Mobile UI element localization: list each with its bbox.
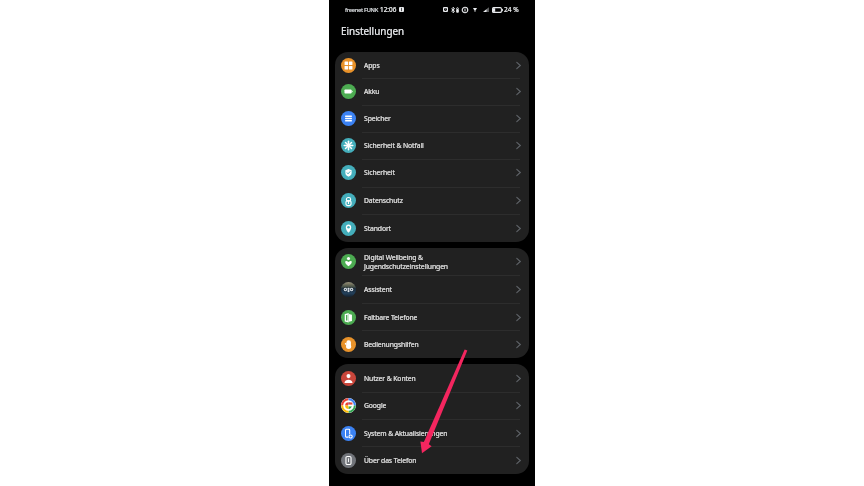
staticText: Jugendschutzeinstellungen — [364, 262, 448, 271]
button[interactable]: Speicher — [335, 105, 529, 132]
button[interactable]: Datenschutz — [335, 187, 529, 214]
button[interactable]: Über das Telefon — [335, 446, 529, 474]
staticText: Apps — [364, 61, 380, 70]
staticText: Bedienungshilfen — [364, 340, 419, 349]
staticText: Speicher — [364, 114, 391, 123]
staticText: Nutzer & Konten — [364, 374, 416, 383]
other: Mobile signal — [483, 7, 489, 12]
button[interactable]: Assistent — [335, 275, 529, 303]
staticText: Faltbare Telefone — [364, 313, 418, 322]
staticText: Sicherheit & Notfall — [364, 141, 424, 150]
staticText: Sicherheit — [364, 168, 395, 177]
button[interactable]: Faltbare Telefone — [335, 303, 529, 331]
button[interactable]: Standort — [335, 214, 529, 242]
staticText: System & Aktualisierungen — [364, 429, 448, 438]
staticText: Standort — [364, 224, 391, 233]
staticText: Assistent — [364, 285, 392, 294]
button[interactable]: Sicherheit — [335, 159, 529, 186]
button[interactable]: Akku — [335, 78, 529, 105]
button[interactable]: Sicherheit & Notfall — [335, 132, 529, 159]
other: Do not disturb — [462, 7, 468, 13]
staticText: Datenschutz — [364, 196, 403, 205]
button[interactable]: Apps — [335, 52, 529, 78]
staticText: Über das Telefon — [364, 456, 417, 465]
other: Battery — [492, 7, 503, 13]
other: Silent mode — [456, 7, 459, 13]
button[interactable]: System & Aktualisierungen — [335, 419, 529, 447]
staticText: 12:06 — [380, 5, 397, 14]
other: Bluetooth — [451, 7, 455, 13]
staticText: Einstellungen — [341, 24, 405, 37]
button[interactable]: Nutzer & Konten — [335, 364, 529, 392]
button[interactable]: Bedienungshilfen — [335, 330, 529, 358]
staticText: 24 % — [504, 5, 519, 14]
staticText: Google — [364, 401, 387, 410]
staticText: freenet FUNK — [345, 6, 378, 14]
staticText: Akku — [364, 87, 380, 96]
staticText: Digital Wellbeing & — [364, 253, 423, 262]
other: Wi-Fi — [473, 7, 477, 12]
other: Alarm — [443, 7, 448, 12]
button[interactable]: Digital Wellbeing & — [335, 248, 529, 275]
button[interactable]: Google — [335, 392, 529, 419]
